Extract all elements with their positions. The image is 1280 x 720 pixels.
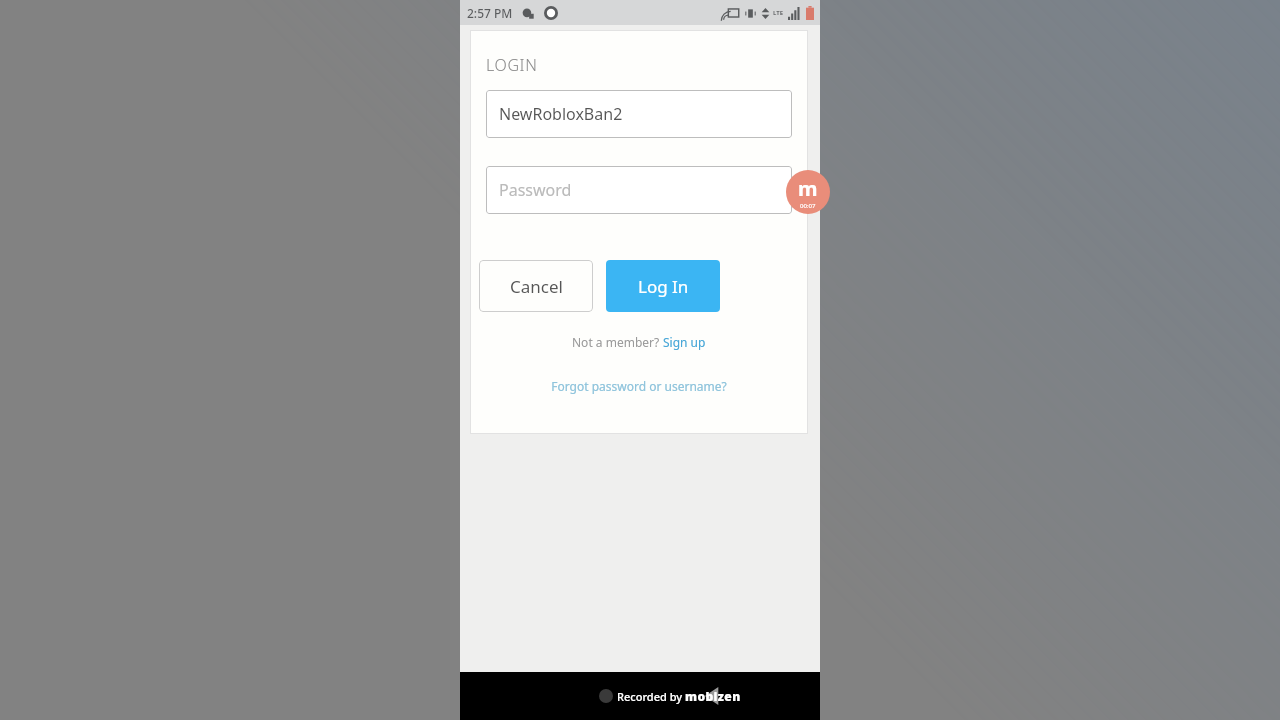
button[interactable]: Mobizen recorder — [786, 170, 830, 214]
button[interactable]: Password — [486, 166, 792, 214]
staticText: Not a member? — [572, 334, 663, 350]
staticText: Log In — [638, 275, 689, 298]
staticText: LTE — [773, 9, 784, 17]
staticText: Cancel — [510, 275, 563, 298]
staticText: Forgot password or username? — [551, 378, 727, 394]
staticText: 00:07 — [800, 202, 816, 210]
button[interactable]: Back — [532, 672, 892, 720]
staticText: mobizen — [685, 688, 741, 704]
staticText: m — [798, 175, 818, 202]
staticText: LOGIN — [486, 54, 538, 76]
staticText: NewRobloxBan2 — [499, 103, 623, 125]
staticText: Sign up — [663, 334, 706, 350]
button[interactable]: NewRobloxBan2 — [486, 90, 792, 138]
staticText: Password — [499, 179, 572, 201]
button[interactable]: Sign up — [663, 334, 706, 350]
staticText: 2:57 PM — [467, 5, 513, 21]
button[interactable]: Cancel — [479, 260, 593, 312]
button[interactable]: Log In — [606, 260, 720, 312]
button[interactable]: Forgot password or username? — [470, 378, 808, 394]
staticText: Recorded by — [617, 689, 685, 704]
